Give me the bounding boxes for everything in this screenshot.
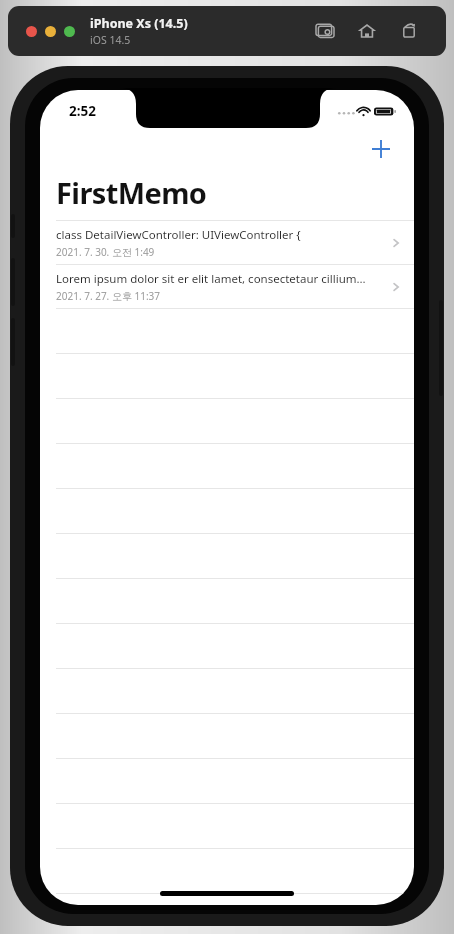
button[interactable]: Screenshot: [312, 18, 338, 44]
staticText: 2021. 7. 27. 오후 11:37: [56, 289, 161, 303]
button[interactable]: Add memo: [367, 135, 395, 163]
button[interactable]: Rotate: [396, 18, 422, 44]
staticText: Lorem ipsum dolor sit er elit lamet, con…: [56, 271, 366, 287]
button[interactable]: class DetailViewController: UIViewContro…: [40, 221, 414, 264]
button[interactable]: Lorem ipsum dolor sit er elit lamet, con…: [40, 265, 414, 308]
staticText: 2021. 7. 30. 오전 1:49: [56, 245, 155, 259]
button[interactable]: [26, 26, 37, 37]
staticText: iOS 14.5: [90, 33, 131, 47]
button[interactable]: Home: [354, 18, 380, 44]
staticText: 2:52: [69, 102, 96, 120]
staticText: iPhone Xs (14.5): [90, 15, 188, 32]
button[interactable]: [64, 26, 75, 37]
button[interactable]: [40, 849, 414, 893]
staticText: FirstMemo: [56, 173, 207, 212]
button[interactable]: [45, 26, 56, 37]
staticText: class DetailViewController: UIViewContro…: [56, 227, 301, 243]
